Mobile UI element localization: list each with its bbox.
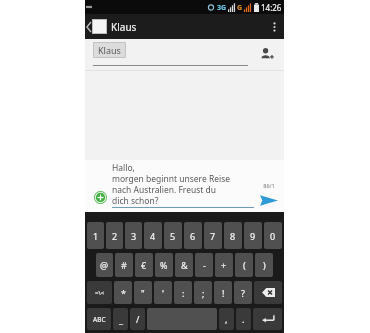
- button[interactable]: :: [174, 281, 192, 304]
- staticText: -: [203, 259, 206, 271]
- button[interactable]: 3: [125, 222, 142, 249]
- staticText: @: [100, 259, 109, 271]
- staticText: 3: [131, 230, 137, 242]
- button[interactable]: 0: [264, 222, 282, 249]
- button[interactable]: 4: [144, 222, 162, 249]
- staticText: 8: [230, 230, 236, 242]
- staticText: 86/1: [263, 182, 275, 189]
- button[interactable]: 5: [164, 222, 182, 249]
- staticText: &: [181, 259, 188, 271]
- button[interactable]: #: [115, 253, 133, 277]
- staticText: /: [136, 313, 140, 325]
- staticText: 9: [250, 230, 256, 242]
- staticText: ": [141, 287, 145, 299]
- button[interactable]: ): [255, 253, 273, 277]
- button[interactable]: +: [215, 253, 233, 277]
- staticText: 6: [190, 230, 196, 242]
- button[interactable]: ': [154, 281, 172, 304]
- staticText: #: [121, 259, 127, 271]
- button[interactable]: ,: [219, 308, 234, 330]
- staticText: %: [160, 259, 168, 271]
- staticText: 14:26: [261, 2, 282, 13]
- staticText: =\<: [95, 289, 105, 297]
- staticText: *: [121, 287, 126, 299]
- staticText: ?: [241, 287, 245, 299]
- button[interactable]: ;: [194, 281, 212, 304]
- staticText: (: [243, 259, 246, 271]
- staticText: _: [119, 313, 123, 325]
- staticText: G: [237, 3, 243, 13]
- button[interactable]: *: [114, 281, 132, 304]
- staticText: Hallo, morgen beginnt unsere Reise nach …: [112, 162, 231, 206]
- button[interactable]: .: [236, 308, 251, 330]
- staticText: 1: [93, 230, 99, 242]
- staticText: 4: [150, 230, 156, 242]
- staticText: !: [222, 287, 225, 299]
- staticText: Klaus: [111, 20, 137, 34]
- button[interactable]: _: [113, 308, 128, 330]
- button[interactable]: -: [195, 253, 213, 277]
- button[interactable]: =\<: [87, 281, 112, 304]
- button[interactable]: @: [96, 253, 113, 277]
- staticText: +: [221, 259, 227, 271]
- staticText: 3G: [217, 3, 227, 13]
- staticText: 2: [112, 230, 118, 242]
- staticText: 0: [270, 230, 276, 242]
- staticText: Klaus: [98, 44, 121, 56]
- button[interactable]: Enter: [253, 308, 282, 330]
- button[interactable]: 1: [87, 222, 104, 249]
- button[interactable]: Klaus: [93, 42, 126, 58]
- button[interactable]: ?: [234, 281, 252, 304]
- staticText: 5: [170, 230, 176, 242]
- button[interactable]: !: [214, 281, 232, 304]
- staticText: ,: [225, 313, 228, 325]
- button[interactable]: 8: [224, 222, 242, 249]
- staticText: €: [141, 259, 147, 271]
- staticText: ;: [202, 287, 205, 299]
- button[interactable]: &: [175, 253, 193, 277]
- staticText: 7: [210, 230, 216, 242]
- button[interactable]: %: [155, 253, 173, 277]
- button[interactable]: 7: [204, 222, 222, 249]
- staticText: ): [263, 259, 266, 271]
- button[interactable]: Add attachment: [88, 185, 112, 209]
- button[interactable]: 6: [184, 222, 202, 249]
- button[interactable]: Backspace: [254, 281, 282, 304]
- button[interactable]: 9: [244, 222, 262, 249]
- button[interactable]: More options: [264, 14, 284, 39]
- button[interactable]: Back: [85, 14, 107, 39]
- button[interactable]: (: [235, 253, 253, 277]
- button[interactable]: 2: [106, 222, 123, 249]
- button[interactable]: /: [130, 308, 145, 330]
- button[interactable]: €: [135, 253, 153, 277]
- button[interactable]: Add recipient: [256, 43, 278, 65]
- staticText: .: [242, 313, 245, 325]
- button[interactable]: ": [134, 281, 152, 304]
- staticText: ': [162, 287, 165, 299]
- button[interactable]: ABC: [87, 308, 111, 330]
- button[interactable]: Send: [257, 191, 281, 209]
- staticText: ABC: [93, 315, 106, 324]
- staticText: :: [182, 287, 185, 299]
